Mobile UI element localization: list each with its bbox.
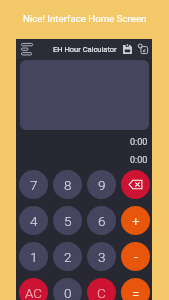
- button[interactable]: Delete: [121, 170, 150, 199]
- button[interactable]: 2: [53, 242, 82, 271]
- button[interactable]: 6: [87, 206, 116, 235]
- staticText: 2: [64, 249, 72, 265]
- button[interactable]: C: [87, 278, 116, 300]
- button[interactable]: Save: [119, 41, 135, 57]
- staticText: +: [132, 213, 140, 229]
- button[interactable]: -: [121, 242, 150, 271]
- other: Delete: [128, 177, 143, 192]
- staticText: C: [97, 285, 106, 300]
- button[interactable]: +: [121, 206, 150, 235]
- staticText: AC: [25, 285, 43, 300]
- staticText: 6: [98, 213, 106, 229]
- button[interactable]: 3: [87, 242, 116, 271]
- staticText: 3: [98, 249, 106, 265]
- button[interactable]: 0: [53, 278, 82, 300]
- button[interactable]: 8: [53, 170, 82, 199]
- staticText: 0: [64, 285, 72, 300]
- staticText: 9: [98, 177, 106, 193]
- button[interactable]: 7: [19, 170, 48, 199]
- button[interactable]: 4: [19, 206, 48, 235]
- staticText: -: [134, 249, 138, 265]
- button[interactable]: =: [121, 278, 150, 300]
- button[interactable]: 1: [19, 242, 48, 271]
- staticText: 0:00: [130, 155, 148, 166]
- staticText: 5: [64, 213, 72, 229]
- button[interactable]: 5: [53, 206, 82, 235]
- staticText: 8: [64, 177, 72, 193]
- staticText: EH Hour Calculator: [53, 45, 117, 54]
- staticText: 1: [30, 249, 38, 265]
- button[interactable]: Menu: [17, 39, 37, 59]
- button[interactable]: AC: [19, 278, 48, 300]
- button[interactable]: 9: [87, 170, 116, 199]
- staticText: 0:00: [130, 137, 148, 148]
- staticText: 7: [30, 177, 38, 193]
- button[interactable]: History: [135, 41, 151, 57]
- staticText: Nice! Interface Home Screen: [23, 13, 147, 24]
- staticText: =: [132, 285, 140, 300]
- staticText: 4: [30, 213, 38, 229]
